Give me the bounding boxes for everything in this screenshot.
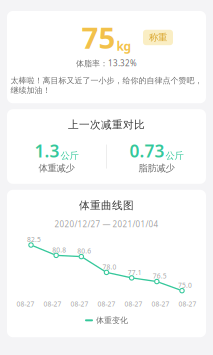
staticText: kg <box>116 38 131 54</box>
staticText: 体重减少 <box>38 162 74 174</box>
staticText: 1.3 <box>34 139 59 162</box>
staticText: 公斤 <box>165 150 183 161</box>
staticText: 公斤 <box>60 150 78 161</box>
staticText: 体脂率：13.32% <box>76 58 137 69</box>
staticText: 82.5 <box>27 235 41 244</box>
staticText: 78.0 <box>102 262 116 271</box>
staticText: 77.1 <box>128 268 142 277</box>
staticText: 08-27 <box>151 299 169 308</box>
staticText: 75.0 <box>178 281 192 290</box>
staticText: 体重曲线图 <box>79 199 134 212</box>
staticText: 08-27 <box>178 299 196 308</box>
staticText: 08-27 <box>16 299 34 308</box>
staticText: 2020/12/27 — 2021/01/04 <box>54 219 158 229</box>
staticText: 08-27 <box>70 299 88 308</box>
staticText: 08-27 <box>97 299 115 308</box>
staticText: 08-27 <box>124 299 142 308</box>
staticText: 太棒啦！离目标又近了一小步，给你的自律点个赞吧，继续加油！ <box>10 76 202 95</box>
staticText: 80.8 <box>52 245 66 254</box>
staticText: 80.6 <box>77 247 91 255</box>
button[interactable]: 称重 <box>143 30 173 45</box>
staticText: 体重变化 <box>96 315 128 325</box>
staticText: 76.5 <box>153 271 167 280</box>
staticText: 称重 <box>149 32 167 43</box>
staticText: 脂肪减少 <box>138 162 174 174</box>
staticText: 75 <box>81 18 115 57</box>
staticText: 08-27 <box>43 299 61 308</box>
staticText: 0.73 <box>129 139 164 162</box>
staticText: 上一次减重对比 <box>68 118 145 131</box>
